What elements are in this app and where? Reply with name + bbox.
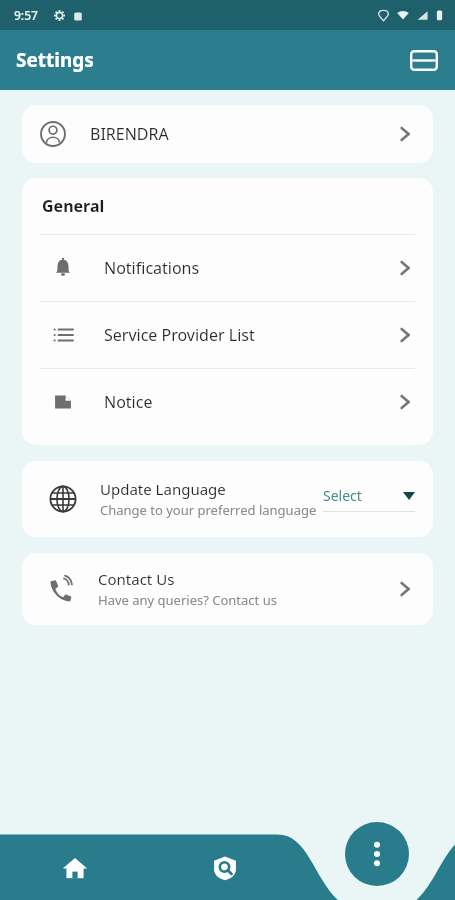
staticText: BIRENDRA [90, 123, 169, 145]
staticText: Select [323, 486, 362, 505]
button[interactable]: Select [323, 486, 415, 512]
staticText: Service Provider List [104, 324, 255, 346]
staticText: 9:57 [14, 7, 38, 23]
button[interactable]: Home [0, 838, 150, 898]
button[interactable]: Contact Us [22, 553, 433, 625]
button[interactable]: More options [345, 822, 409, 886]
button[interactable]: Service Provider List [22, 302, 433, 368]
staticText: Contact Us [98, 569, 175, 589]
button[interactable]: BIRENDRA [22, 105, 433, 163]
staticText: Change to your preferred language [100, 501, 317, 519]
button[interactable]: Update Language [22, 461, 433, 537]
staticText: Update Language [100, 479, 226, 499]
staticText: Notice [104, 391, 153, 413]
staticText: Have any queries? Contact us [98, 591, 277, 609]
staticText: Settings [16, 47, 94, 73]
button[interactable]: Search security [150, 838, 300, 898]
staticText: Notifications [104, 257, 200, 279]
button[interactable]: Card [407, 43, 441, 77]
staticText: General [42, 195, 105, 217]
button[interactable]: Notice [22, 369, 433, 435]
button[interactable]: Notifications [22, 235, 433, 301]
